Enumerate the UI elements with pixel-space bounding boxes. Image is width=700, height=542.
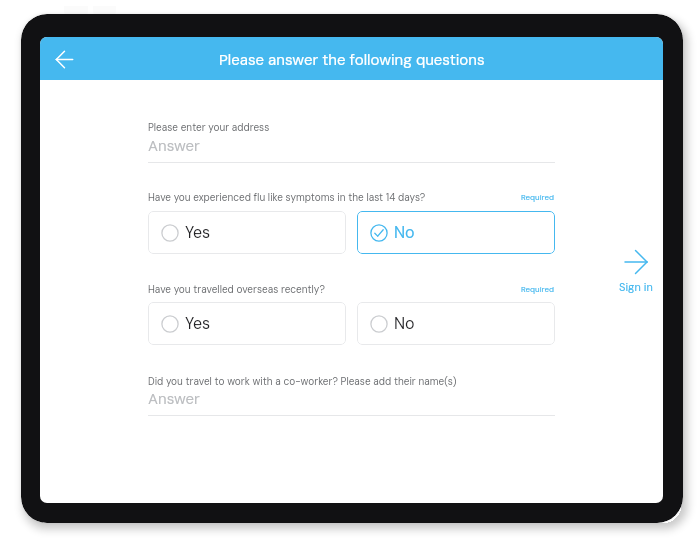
button[interactable]: Answer xyxy=(148,389,555,416)
button[interactable]: No xyxy=(357,302,555,345)
button[interactable]: Answer xyxy=(148,136,555,163)
staticText: Answer xyxy=(148,389,200,409)
staticText: Required xyxy=(521,284,555,294)
button[interactable]: Sign in xyxy=(608,249,663,294)
staticText: Sign in xyxy=(619,280,653,294)
staticText: Required xyxy=(521,192,555,202)
button[interactable]: Back xyxy=(49,44,79,74)
staticText: Please enter your address xyxy=(148,121,270,134)
staticText: Have you travelled overseas recently? xyxy=(148,283,325,296)
staticText: Yes xyxy=(185,222,211,243)
staticText: No xyxy=(394,222,415,243)
button[interactable]: Yes xyxy=(148,211,346,254)
staticText: Answer xyxy=(148,136,200,156)
button[interactable]: Yes xyxy=(148,302,346,345)
staticText: Please answer the following questions xyxy=(219,50,485,70)
staticText: Have you experienced flu like symptoms i… xyxy=(148,191,426,204)
button[interactable]: No xyxy=(357,211,555,254)
staticText: Did you travel to work with a co-worker?… xyxy=(148,375,457,388)
staticText: No xyxy=(394,313,415,334)
staticText: Yes xyxy=(185,313,211,334)
